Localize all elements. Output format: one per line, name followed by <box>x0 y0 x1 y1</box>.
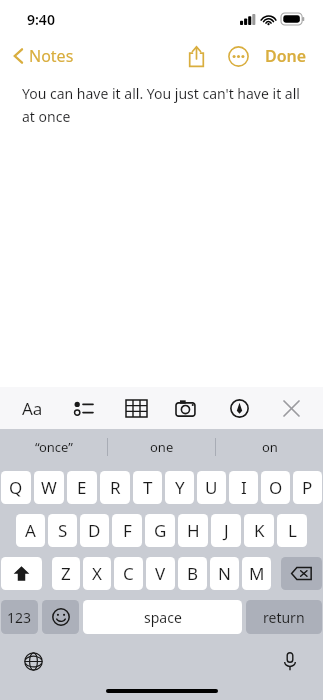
button[interactable]: B <box>178 557 207 590</box>
button[interactable]: G <box>145 514 175 547</box>
button[interactable]: Checklist <box>66 390 102 426</box>
button[interactable]: R <box>100 471 130 504</box>
button[interactable]: Notes <box>9 41 78 71</box>
button[interactable]: Emoji <box>42 600 79 634</box>
button[interactable]: Table <box>118 390 154 426</box>
staticText: S <box>58 519 68 542</box>
staticText: return <box>263 608 305 627</box>
button[interactable]: one <box>108 429 215 464</box>
staticText: E <box>77 476 87 499</box>
button[interactable]: M <box>242 557 271 590</box>
staticText: F <box>123 519 132 542</box>
staticText: Q <box>9 476 23 499</box>
button[interactable]: J <box>211 514 241 547</box>
button[interactable]: on <box>216 429 323 464</box>
button[interactable]: F <box>112 514 142 547</box>
staticText: G <box>154 519 167 542</box>
staticText: Z <box>61 562 71 585</box>
staticText: P <box>302 476 313 499</box>
button[interactable]: Shift <box>1 557 42 590</box>
staticText: on <box>262 438 278 456</box>
staticText: H <box>187 519 200 542</box>
button[interactable]: 123 <box>1 600 38 634</box>
button[interactable]: Done <box>261 41 311 71</box>
button[interactable]: K <box>244 514 274 547</box>
button[interactable]: Markup <box>221 390 257 426</box>
staticText: one <box>150 438 174 456</box>
button[interactable]: P <box>293 471 322 504</box>
staticText: O <box>269 476 283 499</box>
button[interactable]: space <box>83 600 242 634</box>
button[interactable]: T <box>133 471 162 504</box>
staticText: X <box>92 562 102 585</box>
button[interactable]: I <box>229 471 258 504</box>
staticText: Notes <box>29 45 74 67</box>
button[interactable]: A <box>16 514 45 547</box>
button[interactable]: N <box>210 557 239 590</box>
button[interactable]: Close keyboard <box>273 390 309 426</box>
button[interactable]: L <box>277 514 307 547</box>
staticText: Done <box>265 45 307 67</box>
button[interactable]: S <box>48 514 77 547</box>
button[interactable]: Share <box>179 39 213 73</box>
button[interactable]: Dictation <box>277 648 303 674</box>
button[interactable]: Camera <box>169 390 205 426</box>
button[interactable]: O <box>261 471 290 504</box>
staticText: A <box>25 519 36 542</box>
staticText: T <box>143 476 153 499</box>
staticText: I <box>241 476 247 499</box>
staticText: “once” <box>35 438 73 456</box>
staticText: Y <box>175 476 185 499</box>
staticText: U <box>205 476 218 499</box>
staticText: 9:40 <box>27 10 55 29</box>
button[interactable]: Z <box>52 557 80 590</box>
button[interactable]: E <box>67 471 97 504</box>
staticText: V <box>155 562 166 585</box>
button[interactable]: Change keyboard <box>20 648 46 674</box>
button[interactable]: Q <box>1 471 31 504</box>
button[interactable]: W <box>34 471 64 504</box>
staticText: 123 <box>7 608 32 627</box>
button[interactable]: Backspace <box>281 557 322 590</box>
button[interactable]: return <box>246 600 322 634</box>
staticText: You can have it all. You just can't have… <box>22 84 307 126</box>
button[interactable]: V <box>146 557 175 590</box>
button[interactable]: “once” <box>0 429 107 464</box>
staticText: B <box>187 562 199 585</box>
staticText: M <box>249 562 265 585</box>
button[interactable]: More <box>221 39 255 73</box>
staticText: N <box>218 562 231 585</box>
button[interactable]: Y <box>165 471 194 504</box>
staticText: D <box>88 519 101 542</box>
staticText: space <box>144 608 182 627</box>
staticText: J <box>224 519 229 542</box>
staticText: Aa <box>22 397 43 420</box>
staticText: W <box>41 476 57 499</box>
button[interactable]: H <box>178 514 208 547</box>
button[interactable]: U <box>197 471 226 504</box>
staticText: L <box>288 519 297 542</box>
staticText: C <box>123 562 134 585</box>
button[interactable]: C <box>114 557 143 590</box>
button[interactable]: X <box>83 557 111 590</box>
button[interactable]: Text format <box>14 390 50 426</box>
staticText: K <box>254 519 265 542</box>
button[interactable]: D <box>80 514 109 547</box>
staticText: R <box>110 476 121 499</box>
